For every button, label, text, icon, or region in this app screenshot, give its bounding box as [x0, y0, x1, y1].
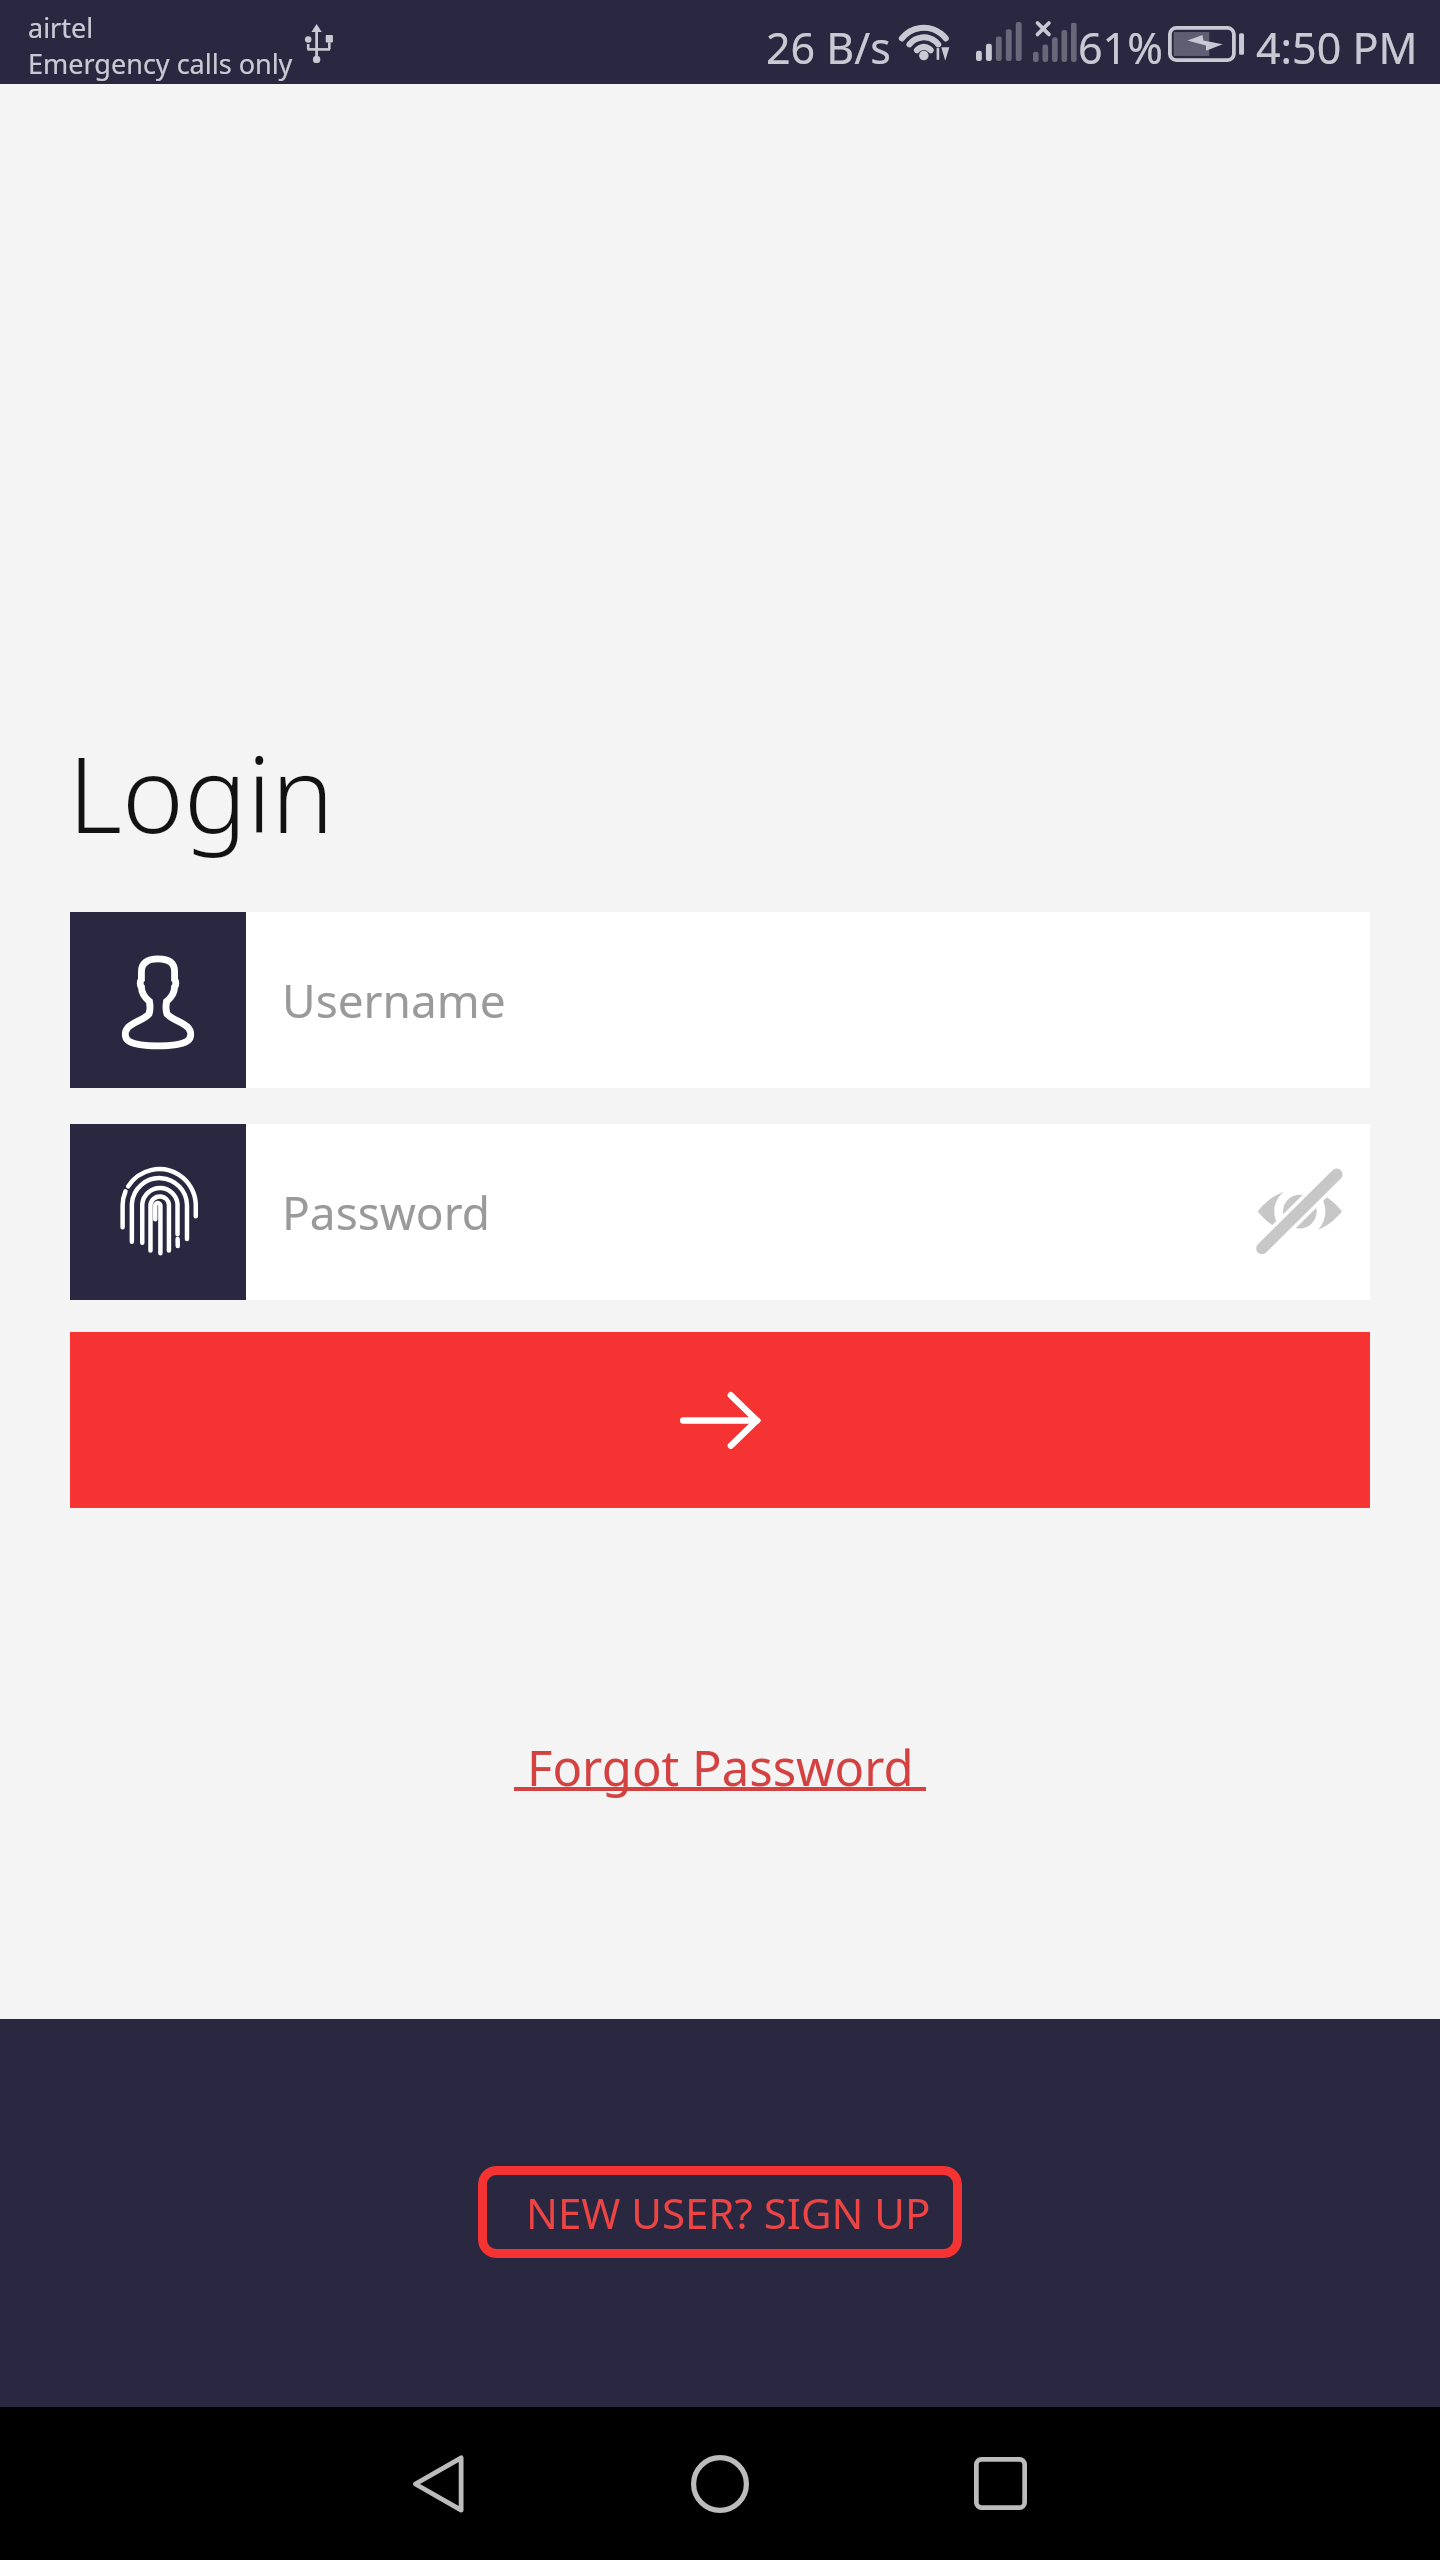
button[interactable]: NEW USER? SIGN UP: [478, 2166, 962, 2258]
button[interactable]: Back: [378, 2407, 498, 2560]
staticText: Forgot Password: [527, 1734, 914, 1801]
staticText: 26 B/s: [766, 18, 891, 77]
staticText: 4:50 PM: [1256, 18, 1418, 77]
button[interactable]: Forgot Password: [514, 1734, 926, 1802]
button[interactable]: Recents: [940, 2407, 1060, 2560]
staticText: airtel: [28, 9, 94, 46]
button[interactable]: Show password: [1242, 1155, 1356, 1269]
button[interactable]: Sign in: [70, 1332, 1370, 1508]
button[interactable]: Username: [70, 912, 1370, 1088]
staticText: Emergency calls only: [28, 45, 293, 82]
staticText: Login: [68, 721, 334, 864]
button[interactable]: Home: [660, 2407, 780, 2560]
button[interactable]: Password: [70, 1124, 1370, 1300]
staticText: Password: [282, 1181, 491, 1244]
staticText: Username: [282, 969, 506, 1032]
staticText: 61%: [1078, 18, 1163, 77]
staticText: NEW USER? SIGN UP: [526, 2184, 931, 2241]
